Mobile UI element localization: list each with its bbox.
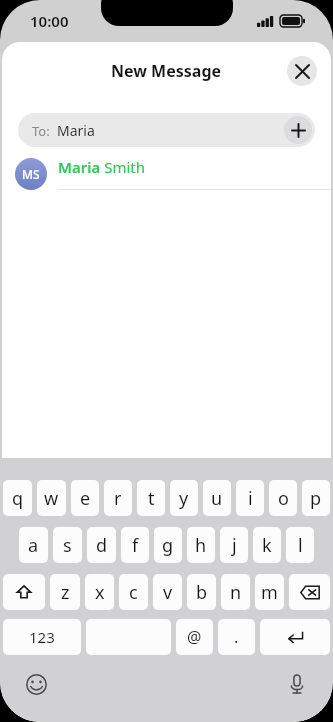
staticText: To:	[32, 122, 50, 140]
button[interactable]: f	[121, 527, 149, 563]
staticText: p	[310, 486, 322, 511]
staticText: e	[80, 486, 91, 511]
button[interactable]: @	[176, 619, 213, 655]
button[interactable]: q	[3, 480, 32, 516]
staticText: n	[230, 580, 242, 605]
staticText: Maria Smith	[58, 157, 145, 177]
button[interactable]: j	[220, 527, 248, 563]
button[interactable]: x	[85, 574, 114, 610]
button[interactable]: z	[50, 574, 80, 610]
button[interactable]: p	[302, 480, 330, 516]
button[interactable]: Close	[287, 56, 317, 86]
staticText: .	[234, 626, 239, 648]
staticText: 10:00	[30, 11, 69, 31]
staticText: Maria	[57, 121, 95, 140]
staticText: a	[28, 533, 39, 558]
button[interactable]: w	[37, 480, 66, 516]
staticText: i	[248, 486, 253, 511]
button[interactable]: e	[71, 480, 99, 516]
button[interactable]: b	[187, 574, 216, 610]
button[interactable]: h	[187, 527, 215, 563]
button[interactable]: g	[154, 527, 182, 563]
staticText: s	[63, 533, 72, 558]
button[interactable]: MS	[2, 157, 331, 190]
button[interactable]: To:	[18, 113, 315, 147]
staticText: MS	[22, 166, 40, 182]
staticText: v	[163, 580, 173, 605]
staticText: l	[298, 533, 303, 558]
staticText: r	[114, 486, 122, 511]
button[interactable]: n	[221, 574, 250, 610]
button[interactable]: o	[269, 480, 297, 516]
staticText: b	[196, 580, 208, 605]
staticText: g	[162, 533, 174, 558]
staticText: t	[148, 486, 155, 511]
staticText: j	[232, 533, 237, 558]
button[interactable]: d	[87, 527, 116, 563]
staticText: o	[278, 486, 289, 511]
staticText: z	[61, 580, 70, 605]
button[interactable]: 123	[3, 619, 81, 655]
staticText: k	[262, 533, 272, 558]
staticText: New Message	[111, 60, 222, 82]
button[interactable]: Space	[86, 619, 171, 655]
button[interactable]: v	[153, 574, 182, 610]
button[interactable]: Add contact	[284, 116, 312, 144]
staticText: u	[211, 486, 223, 511]
staticText: @	[187, 626, 202, 648]
button[interactable]: t	[137, 480, 165, 516]
staticText: h	[195, 533, 207, 558]
button[interactable]: Shift	[3, 574, 45, 610]
staticText: q	[12, 486, 24, 511]
button[interactable]: Return	[260, 619, 330, 655]
button[interactable]: k	[253, 527, 281, 563]
button[interactable]: i	[236, 480, 264, 516]
staticText: d	[96, 533, 108, 558]
button[interactable]: y	[170, 480, 198, 516]
button[interactable]: s	[53, 527, 82, 563]
staticText: y	[179, 486, 189, 511]
button[interactable]: a	[19, 527, 48, 563]
button[interactable]: Emoji	[22, 670, 50, 698]
button[interactable]: c	[119, 574, 148, 610]
staticText: 123	[29, 627, 55, 647]
button[interactable]: Backspace	[289, 574, 330, 610]
button[interactable]: .	[218, 619, 255, 655]
staticText: x	[95, 580, 105, 605]
button[interactable]: Dictate	[283, 670, 311, 698]
staticText: c	[129, 580, 138, 605]
button[interactable]: u	[203, 480, 231, 516]
staticText: f	[132, 533, 139, 558]
button[interactable]: l	[286, 527, 314, 563]
button[interactable]: m	[255, 574, 284, 610]
button[interactable]: r	[104, 480, 132, 516]
staticText: m	[261, 580, 278, 605]
staticText: w	[44, 486, 59, 511]
